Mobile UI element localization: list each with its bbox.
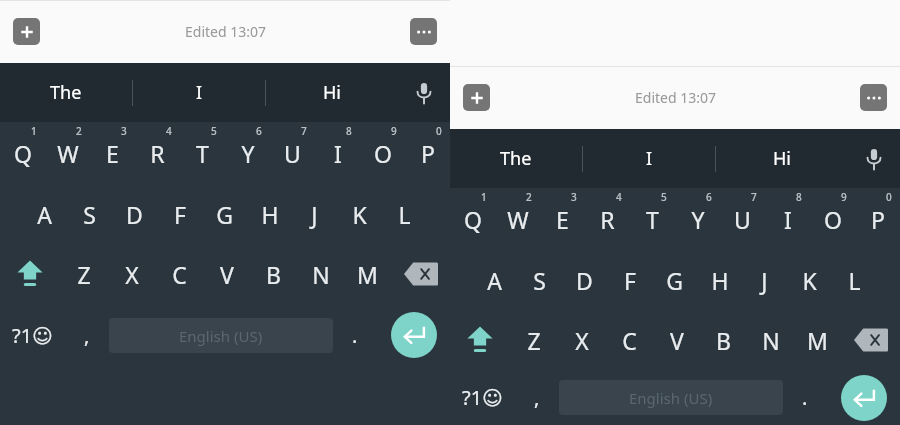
button[interactable]: I [133, 63, 265, 122]
button[interactable]: Enter [391, 312, 437, 358]
button[interactable]: ?1☺ [450, 370, 515, 425]
button[interactable]: L [832, 250, 877, 310]
button[interactable]: W [45, 122, 90, 184]
button[interactable]: S [517, 250, 562, 310]
button[interactable]: Enter [841, 375, 887, 421]
staticText: G [666, 265, 683, 296]
button[interactable]: Z [60, 244, 108, 304]
button[interactable]: D [112, 184, 157, 244]
button[interactable]: D [562, 250, 607, 310]
button[interactable]: A [472, 250, 517, 310]
button[interactable]: H [697, 250, 742, 310]
button[interactable]: Backspace [841, 310, 900, 370]
button[interactable]: E [90, 122, 135, 184]
button[interactable]: J [742, 250, 787, 310]
button[interactable]: Add [463, 84, 490, 111]
button[interactable]: N [297, 244, 344, 304]
button[interactable]: S [67, 184, 112, 244]
button[interactable]: Y [675, 188, 720, 250]
button[interactable]: Backspace [391, 244, 450, 304]
button[interactable]: I [583, 129, 715, 188]
staticText: H [261, 199, 279, 230]
button[interactable]: T [180, 122, 225, 184]
staticText: . [352, 322, 358, 349]
staticText: F [624, 265, 636, 296]
staticText: V [220, 259, 234, 290]
button[interactable]: , [65, 304, 109, 366]
button[interactable]: X [558, 310, 606, 370]
button[interactable]: J [292, 184, 337, 244]
staticText: 6 [706, 190, 712, 204]
button[interactable]: Shift [450, 310, 510, 370]
button[interactable]: Q [450, 188, 495, 250]
button[interactable]: K [787, 250, 832, 310]
button[interactable]: P [855, 188, 900, 250]
button[interactable]: . [333, 304, 377, 366]
button[interactable]: L [382, 184, 427, 244]
button[interactable]: M [794, 310, 841, 370]
button[interactable]: B [700, 310, 747, 370]
button[interactable]: More options [860, 84, 887, 111]
button[interactable]: Hi [716, 129, 848, 188]
button[interactable]: C [606, 310, 653, 370]
button[interactable]: English (US) [559, 380, 783, 415]
button[interactable]: The [0, 63, 132, 122]
button[interactable]: The [450, 129, 582, 188]
button[interactable]: Z [510, 310, 558, 370]
button[interactable]: B [250, 244, 297, 304]
staticText: U [734, 204, 751, 235]
button[interactable]: R [135, 122, 180, 184]
button[interactable]: T [630, 188, 675, 250]
button[interactable]: Add [13, 18, 40, 45]
button[interactable]: More options [410, 18, 437, 45]
button[interactable]: English (US) [109, 318, 333, 353]
button[interactable]: V [653, 310, 700, 370]
button[interactable]: ?1☺ [0, 304, 65, 366]
button[interactable]: U [270, 122, 315, 184]
button[interactable]: I [315, 122, 360, 184]
button[interactable]: . [783, 370, 827, 425]
button[interactable]: Voice input [848, 129, 900, 188]
staticText: J [761, 265, 768, 296]
staticText: T [196, 138, 209, 169]
button[interactable]: Q [0, 122, 45, 184]
button[interactable]: C [156, 244, 203, 304]
button[interactable]: E [540, 188, 585, 250]
staticText: The [500, 146, 532, 171]
staticText: W [507, 204, 529, 235]
button[interactable]: V [203, 244, 250, 304]
button[interactable]: , [515, 370, 559, 425]
button[interactable]: Hi [266, 63, 398, 122]
button[interactable]: F [607, 250, 652, 310]
button[interactable]: Shift [0, 244, 60, 304]
button[interactable]: I [765, 188, 810, 250]
button[interactable]: O [810, 188, 855, 250]
staticText: P [421, 138, 435, 169]
staticText: 1 [481, 190, 487, 204]
button[interactable]: Y [225, 122, 270, 184]
button[interactable]: A [22, 184, 67, 244]
button[interactable]: R [585, 188, 630, 250]
button[interactable]: N [747, 310, 794, 370]
staticText: 8 [796, 190, 802, 204]
staticText: 5 [661, 190, 667, 204]
button[interactable]: H [247, 184, 292, 244]
button[interactable]: M [344, 244, 391, 304]
button[interactable]: F [157, 184, 202, 244]
staticText: 1 [31, 124, 37, 138]
staticText: ?1☺ [462, 384, 503, 411]
button[interactable]: K [337, 184, 382, 244]
button[interactable]: Voice input [398, 63, 450, 122]
staticText: E [556, 204, 569, 235]
button[interactable]: W [495, 188, 540, 250]
staticText: 9 [391, 124, 397, 138]
button[interactable]: X [108, 244, 156, 304]
button[interactable]: G [202, 184, 247, 244]
button[interactable]: U [720, 188, 765, 250]
button[interactable]: O [360, 122, 405, 184]
staticText: L [398, 199, 411, 230]
staticText: 9 [841, 190, 847, 204]
staticText: K [802, 265, 817, 296]
button[interactable]: G [652, 250, 697, 310]
button[interactable]: P [405, 122, 450, 184]
